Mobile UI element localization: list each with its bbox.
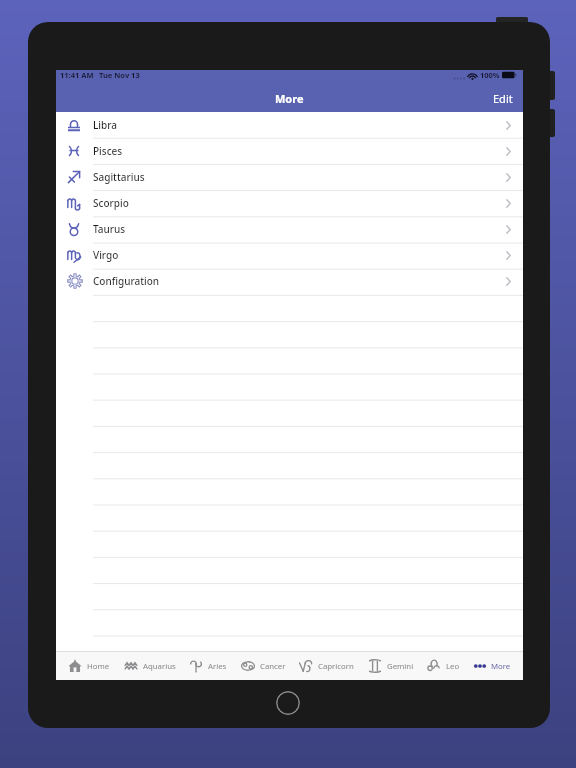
button[interactable]: Sagittarius [56, 164, 523, 190]
button[interactable]: Libra [56, 112, 523, 138]
staticText: Configuration [93, 274, 160, 288]
button[interactable]: Edit [483, 91, 523, 106]
button[interactable]: Capricorn [298, 659, 355, 673]
staticText: Pisces [93, 144, 123, 158]
staticText: Scorpio [93, 196, 129, 210]
staticText: Aries [208, 661, 227, 672]
staticText: Capricorn [318, 661, 354, 672]
staticText: Virgo [93, 248, 119, 262]
button[interactable]: Configuration [56, 268, 523, 294]
staticText: Gemini [387, 661, 414, 672]
button[interactable]: Home [67, 659, 111, 673]
staticText: Sagittarius [93, 170, 145, 184]
staticText: Libra [93, 118, 117, 132]
button[interactable]: More [473, 660, 512, 672]
button[interactable]: Leo [426, 659, 461, 673]
staticText: Edit [493, 91, 513, 106]
staticText: Tue Nov 13 [99, 70, 140, 80]
staticText: Aquarius [143, 661, 176, 672]
button[interactable]: Scorpio [56, 190, 523, 216]
staticText: Taurus [93, 222, 126, 236]
button[interactable]: Virgo [56, 242, 523, 268]
staticText: Home [87, 661, 110, 672]
staticText: Leo [446, 661, 460, 672]
staticText: More [491, 661, 511, 672]
staticText: 100% [480, 70, 500, 80]
staticText: Cancer [260, 661, 286, 672]
button[interactable]: Cancer [240, 659, 287, 673]
button[interactable]: Aquarius [123, 659, 177, 673]
button[interactable]: Taurus [56, 216, 523, 242]
button[interactable]: Gemini [367, 659, 415, 673]
staticText: 11:41 AM [60, 70, 94, 80]
staticText: More [275, 91, 304, 106]
button[interactable]: Pisces [56, 138, 523, 164]
button[interactable]: Aries [188, 659, 228, 673]
